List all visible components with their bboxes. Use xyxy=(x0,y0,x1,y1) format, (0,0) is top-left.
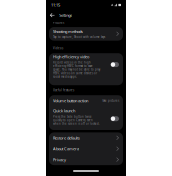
button[interactable]: Shooting methods xyxy=(49,27,123,41)
staticText: Videos xyxy=(53,46,63,50)
button[interactable]: Back xyxy=(48,11,56,20)
button[interactable]: Quick launch xyxy=(49,106,123,130)
staticText: Record videos in the high efficiency HEV… xyxy=(53,61,100,78)
staticText: Volume button action xyxy=(53,98,88,103)
staticText: Privacy xyxy=(53,157,66,162)
staticText: Quick launch xyxy=(53,108,75,113)
button[interactable]: Privacy xyxy=(49,154,123,165)
staticText: Pictures xyxy=(53,21,64,24)
button[interactable]: Restore defaults xyxy=(49,132,123,143)
staticText: About Camera xyxy=(53,146,79,151)
staticText: High efficiency video xyxy=(53,54,89,59)
staticText: Settings xyxy=(59,12,72,18)
staticText: Restore defaults xyxy=(53,135,80,140)
button[interactable]: High efficiency video xyxy=(49,53,123,85)
staticText: 11:15 xyxy=(51,2,60,8)
staticText: Press the Side button twice quickly to o… xyxy=(53,115,100,125)
staticText: Take pictures xyxy=(102,99,119,102)
button[interactable]: Volume button action xyxy=(49,95,123,106)
button[interactable]: About Camera xyxy=(49,143,123,154)
staticText: Tap to capture, Shoot with volume keys xyxy=(53,35,105,39)
staticText: Useful features xyxy=(53,88,74,92)
staticText: Shooting methods xyxy=(53,29,83,34)
